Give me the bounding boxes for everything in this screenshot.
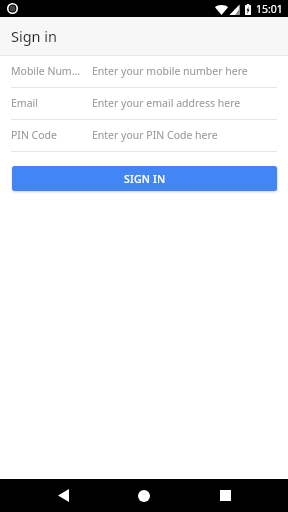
button[interactable]: Home — [120, 479, 168, 512]
button[interactable]: Email — [0, 88, 288, 120]
staticText: SIGN IN — [124, 172, 166, 186]
staticText: Email — [11, 96, 81, 110]
staticText: Mobile Num... — [11, 64, 81, 78]
staticText: PIN Code — [11, 128, 81, 142]
staticText: 15:01 — [256, 2, 283, 16]
button[interactable]: PIN Code — [0, 120, 288, 152]
staticText: Sign in — [11, 26, 58, 46]
staticText: Enter your PIN Code here — [92, 128, 218, 142]
button[interactable]: Mobile Num... — [0, 56, 288, 88]
staticText: Enter your email address here — [92, 96, 241, 110]
button[interactable]: Recent apps — [201, 479, 249, 512]
button[interactable]: SIGN IN — [12, 166, 277, 191]
staticText: Enter your mobile number here — [92, 64, 248, 78]
button[interactable]: Back — [39, 479, 87, 512]
